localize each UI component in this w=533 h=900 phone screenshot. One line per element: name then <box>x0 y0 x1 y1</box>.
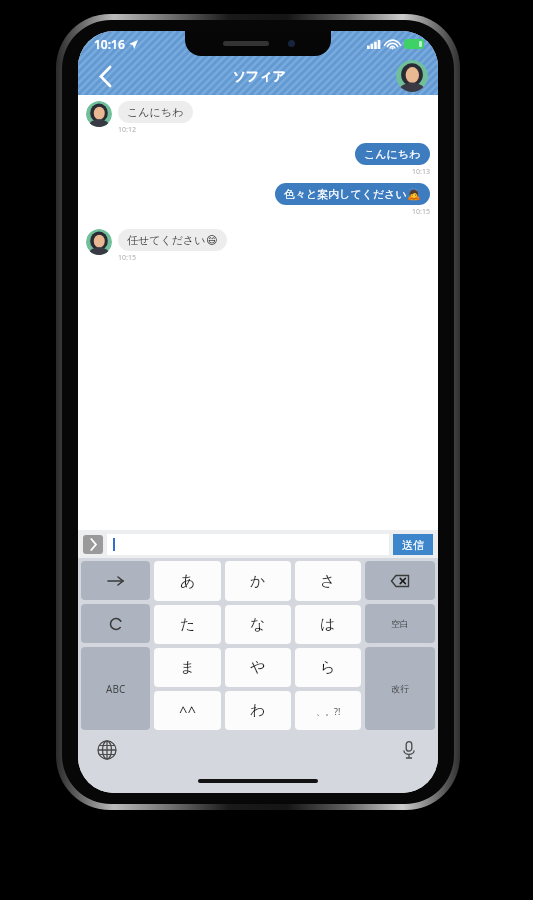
staticText: 任せてください <box>127 233 206 247</box>
staticText: や <box>250 658 266 677</box>
button[interactable]: わ <box>225 691 291 730</box>
staticText: か <box>250 572 266 591</box>
staticText: ABC <box>106 682 126 696</box>
button[interactable]: は <box>295 605 361 644</box>
button[interactable]: More <box>83 535 103 554</box>
button[interactable]: た <box>154 605 221 644</box>
button[interactable]: さ <box>295 561 361 601</box>
button[interactable]: Profile <box>396 60 428 92</box>
staticText: 😄 <box>206 234 218 247</box>
button[interactable]: 色々と案内してください <box>78 183 430 217</box>
button[interactable]: ま <box>154 648 221 687</box>
button[interactable]: Key <box>365 647 435 730</box>
button[interactable]: 任せてください <box>86 229 438 263</box>
staticText: ^^ <box>179 701 197 721</box>
staticText: は <box>320 615 336 634</box>
button[interactable]: Key <box>365 561 435 600</box>
staticText: な <box>250 615 266 634</box>
staticText: 送信 <box>402 538 424 552</box>
button[interactable]: あ <box>154 561 221 601</box>
button[interactable]: Switch keyboard <box>96 739 118 761</box>
button[interactable]: こんにちわ <box>86 101 438 135</box>
staticText: さ <box>320 572 336 591</box>
button[interactable]: や <box>225 648 291 687</box>
button[interactable]: Key <box>365 604 435 643</box>
staticText: 空白 <box>391 618 409 629</box>
button[interactable]: Back <box>88 59 122 93</box>
staticText: た <box>180 615 196 634</box>
staticText: 10:13 <box>412 167 430 177</box>
button[interactable] <box>107 534 389 555</box>
staticText: こんにちわ <box>364 147 421 161</box>
staticText: 改行 <box>391 683 409 694</box>
staticText: 色々と案内してください <box>284 187 407 201</box>
button[interactable]: Dictate <box>398 739 420 761</box>
staticText: ソフィア <box>232 68 286 84</box>
button[interactable]: 、。?! <box>295 691 361 730</box>
button[interactable]: こんにちわ <box>78 143 430 177</box>
staticText: ら <box>320 658 336 677</box>
staticText: あ <box>180 572 196 591</box>
staticText: 🙇 <box>407 188 421 201</box>
staticText: 10:16 <box>94 36 125 52</box>
staticText: わ <box>250 701 266 720</box>
button[interactable]: 送信 <box>393 534 433 555</box>
staticText: こんにちわ <box>127 105 184 119</box>
staticText: ま <box>180 658 196 677</box>
button[interactable]: Key <box>81 647 150 730</box>
button[interactable]: Key <box>81 604 150 643</box>
button[interactable]: ^^ <box>154 691 221 730</box>
button[interactable]: Key <box>81 561 150 600</box>
staticText: 、。?! <box>316 705 341 717</box>
button[interactable]: か <box>225 561 291 601</box>
staticText: 10:15 <box>118 253 136 263</box>
button[interactable]: ら <box>295 648 361 687</box>
staticText: 10:12 <box>118 125 136 135</box>
button[interactable]: な <box>225 605 291 644</box>
staticText: 10:15 <box>412 207 430 217</box>
